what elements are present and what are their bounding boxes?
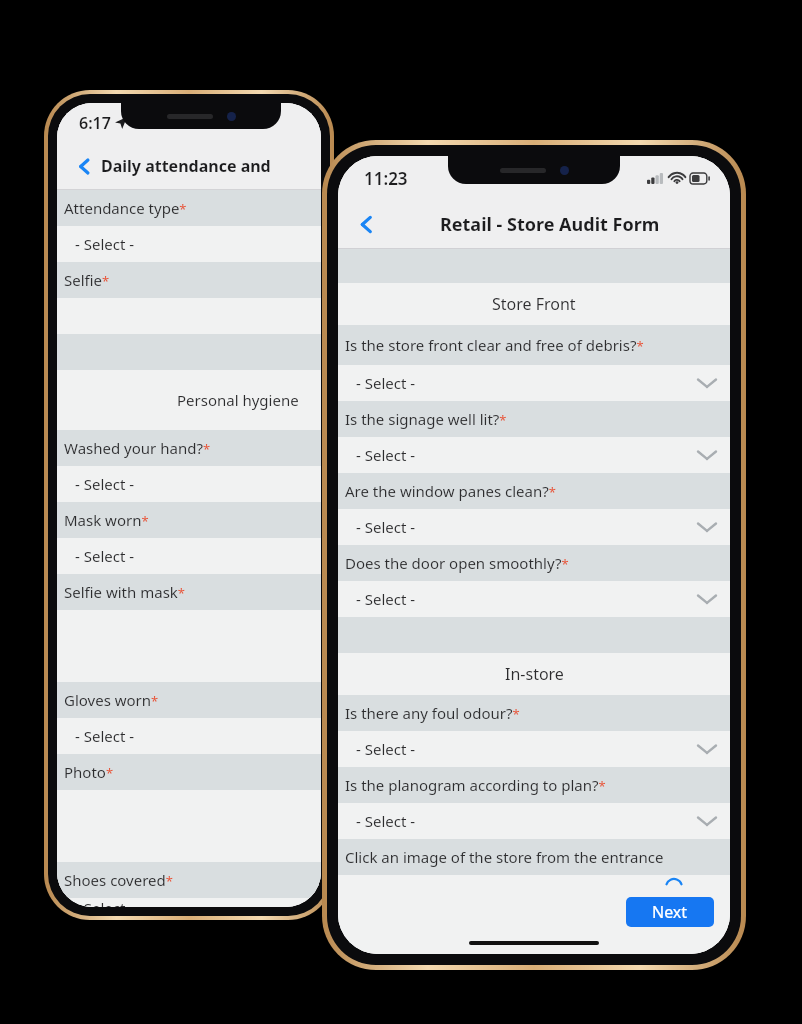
button[interactable]: Shoes covered*	[57, 862, 321, 898]
other: Back	[356, 214, 377, 235]
staticText: Shoes covered*	[64, 870, 173, 890]
staticText: Is the planogram according to plan?*	[345, 775, 606, 795]
staticText: - Select -	[75, 234, 135, 254]
button[interactable]: - Select -	[338, 437, 730, 473]
staticText: Is the signage well lit?*	[345, 409, 507, 429]
button[interactable]: - Select -	[57, 718, 321, 754]
button[interactable]: - Select -	[338, 581, 730, 617]
staticText: - Select -	[356, 517, 416, 537]
staticText: 6:17	[79, 112, 111, 134]
staticText: Mask worn*	[64, 510, 149, 530]
staticText: - Select -	[75, 898, 135, 907]
staticText: 11:23	[364, 167, 408, 190]
staticText: Is there any foul odour?*	[345, 703, 520, 723]
staticText: Click an image of the store from the ent…	[345, 847, 664, 867]
staticText: Photo*	[64, 762, 114, 782]
staticText: Is the store front clear and free of deb…	[345, 335, 644, 355]
staticText: Next	[652, 901, 688, 923]
button[interactable]: Mask worn*	[57, 502, 321, 538]
button[interactable]: - Select -	[57, 898, 321, 907]
staticText: In-store	[505, 663, 564, 685]
staticText: Daily attendance and personal	[101, 155, 321, 177]
staticText: - Select -	[75, 546, 135, 566]
staticText: Are the window panes clean?*	[345, 481, 556, 501]
button[interactable]: Photo*	[57, 754, 321, 790]
button[interactable]: Back	[348, 206, 384, 242]
staticText: Washed your hand?*	[64, 438, 211, 458]
button[interactable]: Selfie with mask*	[57, 574, 321, 610]
staticText: Does the door open smoothly?*	[345, 553, 569, 573]
button[interactable]: - Select -	[338, 509, 730, 545]
button[interactable]: Does the door open smoothly?*	[338, 545, 730, 581]
button[interactable]: Is the signage well lit?*	[338, 401, 730, 437]
button[interactable]: Is the store front clear and free of deb…	[338, 325, 730, 365]
staticText: - Select -	[356, 739, 416, 759]
button[interactable]: Back	[67, 149, 101, 183]
button[interactable]: - Select -	[57, 466, 321, 502]
staticText: Personal hygiene check	[177, 390, 321, 410]
staticText: Selfie with mask*	[64, 582, 185, 602]
button[interactable]: - Select -	[57, 538, 321, 574]
button[interactable]: - Select -	[338, 365, 730, 401]
staticText: - Select -	[356, 811, 416, 831]
button[interactable]: - Select -	[338, 803, 730, 839]
staticText: - Select -	[75, 726, 135, 746]
button[interactable]: Click an image of the store from the ent…	[338, 839, 730, 875]
button[interactable]: Attendance type*	[57, 190, 321, 226]
staticText: Selfie*	[64, 270, 110, 290]
staticText: Store Front	[492, 293, 576, 315]
button[interactable]: Next	[626, 897, 714, 927]
button[interactable]: Are the window panes clean?*	[338, 473, 730, 509]
button[interactable]: Selfie*	[57, 262, 321, 298]
button[interactable]: Is there any foul odour?*	[338, 695, 730, 731]
button[interactable]: Gloves worn*	[57, 682, 321, 718]
button[interactable]: Is the planogram according to plan?*	[338, 767, 730, 803]
staticText: Gloves worn*	[64, 690, 159, 710]
other: Back	[75, 157, 94, 176]
staticText: - Select -	[356, 373, 416, 393]
staticText: - Select -	[356, 589, 416, 609]
staticText: - Select -	[75, 474, 135, 494]
button[interactable]: - Select -	[338, 731, 730, 767]
button[interactable]: - Select -	[57, 226, 321, 262]
staticText: Retail - Store Audit Form	[440, 212, 660, 237]
staticText: Attendance type*	[64, 198, 187, 218]
staticText: - Select -	[356, 445, 416, 465]
button[interactable]: Washed your hand?*	[57, 430, 321, 466]
